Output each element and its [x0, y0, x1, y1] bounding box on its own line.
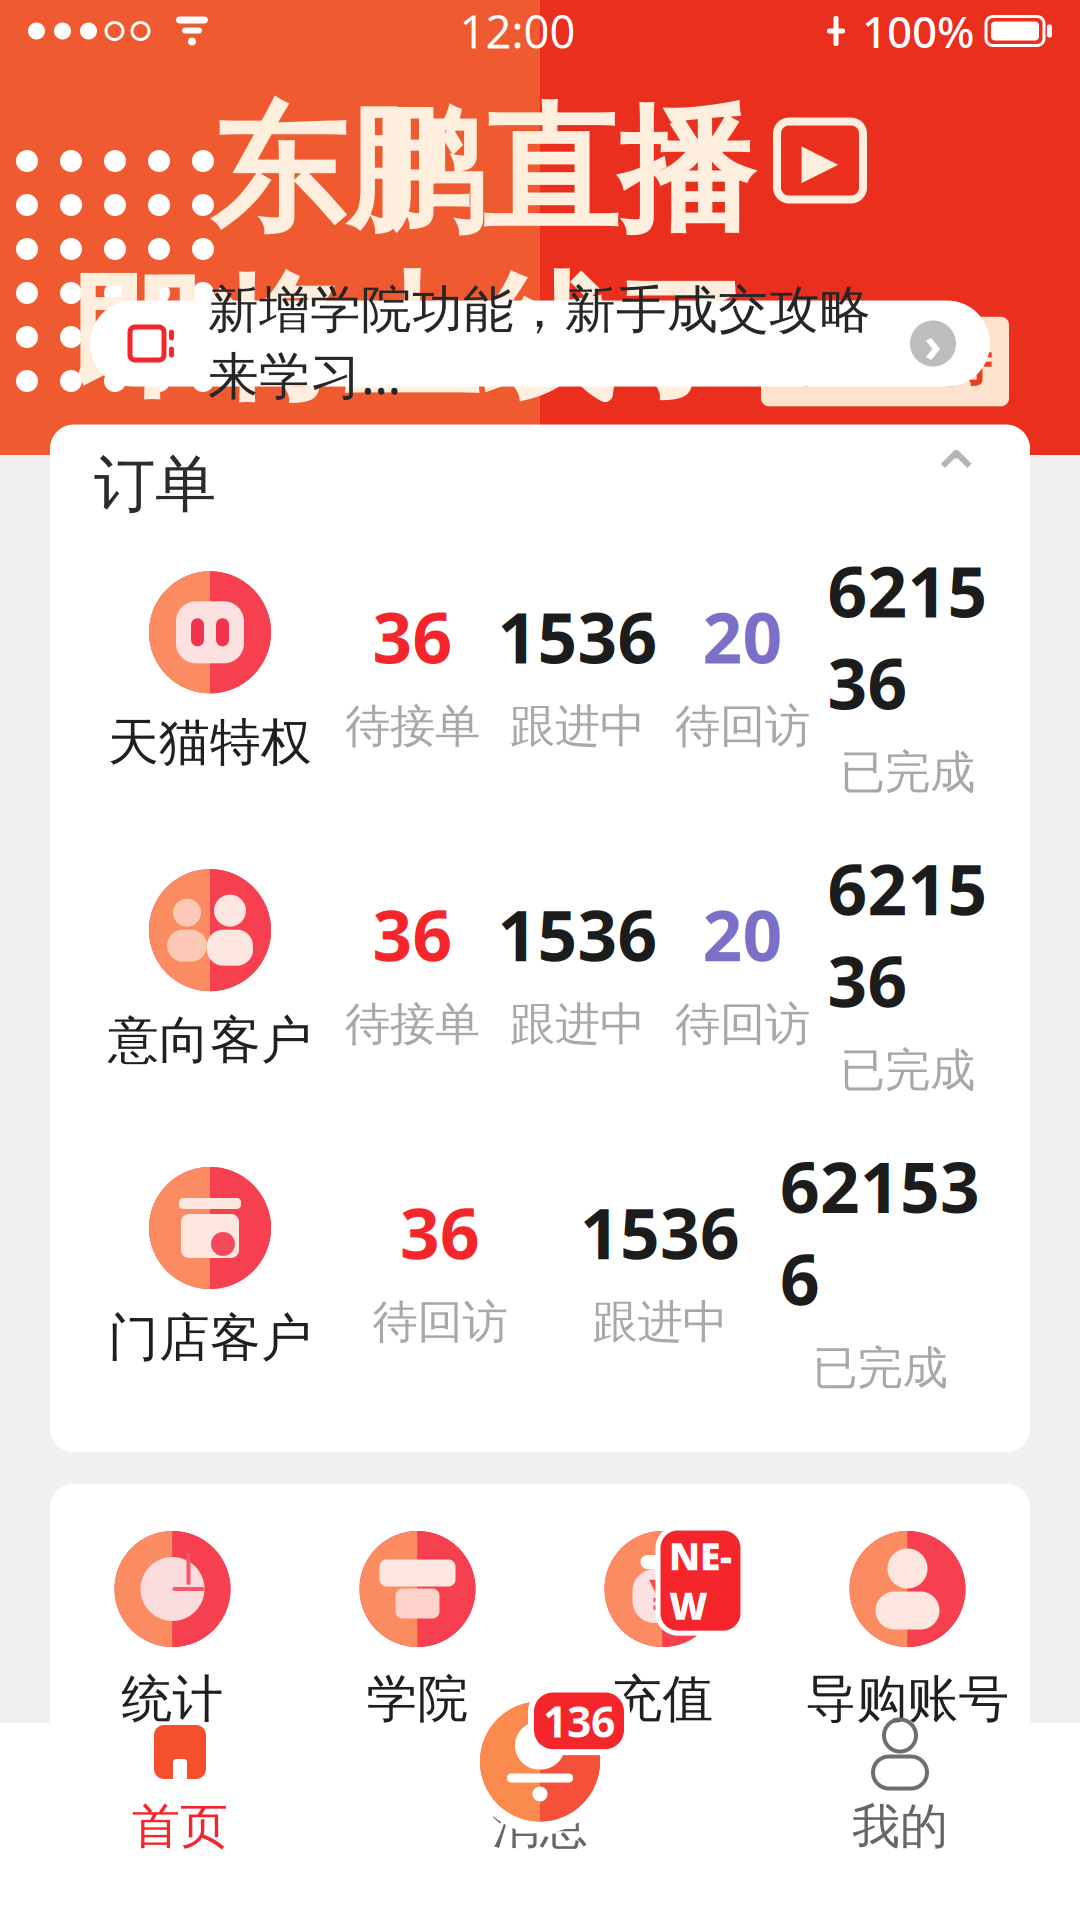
button[interactable]: 我的	[720, 1723, 1080, 1920]
staticText: 订单	[94, 447, 216, 522]
staticText: 东鹏直播	[210, 88, 754, 255]
button[interactable]: 消息	[360, 1723, 720, 1920]
staticText: 12:00	[459, 1, 575, 61]
button[interactable]: NEW	[295, 1760, 540, 1920]
staticText: 20	[702, 888, 782, 980]
button[interactable]: 门店客户	[50, 1140, 1030, 1396]
staticText: 1536	[497, 591, 657, 683]
staticText: 1536	[497, 888, 657, 980]
staticText: NEW	[179, 1763, 242, 1862]
button[interactable]: 新增学院功能，新手成交攻略来学习…	[90, 300, 990, 386]
staticText: 621536	[780, 1140, 980, 1324]
staticText: 跟进中	[592, 1294, 727, 1350]
staticText: 待回访	[675, 699, 810, 754]
staticText: 待回访	[372, 1294, 507, 1350]
staticText: 充值	[611, 1668, 713, 1730]
button[interactable]: 导购账号	[785, 1528, 1030, 1730]
button[interactable]: 学院	[295, 1528, 540, 1730]
staticText: 敬请期待	[779, 329, 991, 394]
staticText: ¥	[649, 1564, 676, 1628]
staticText: 统计	[121, 1668, 223, 1730]
button[interactable]: ¥	[540, 1528, 785, 1730]
button[interactable]: 统计	[50, 1528, 295, 1730]
staticText: ▶	[801, 133, 838, 188]
button[interactable]: ▶	[50, 1760, 295, 1920]
staticText: 已完成	[840, 1042, 975, 1098]
button[interactable]: 天猫特权	[50, 544, 1030, 800]
staticText: NEW	[424, 1763, 487, 1862]
staticText: 跟进中	[510, 996, 645, 1052]
staticText: ▶	[158, 1810, 187, 1852]
staticText: 跟进中	[510, 699, 645, 754]
staticText: 导购账号	[805, 1668, 1009, 1730]
button[interactable]: 消息	[445, 1686, 635, 1836]
staticText: 621536	[827, 842, 987, 1026]
staticText: 621536	[827, 544, 987, 729]
staticText: 新增学院功能，新手成交攻略来学习…	[208, 279, 871, 408]
staticText: 36	[400, 1186, 480, 1278]
staticText: 意向客户	[108, 1009, 312, 1071]
staticText: 待接单	[345, 699, 480, 754]
button[interactable]: 意向客户	[50, 842, 1030, 1098]
staticText: 待回访	[675, 996, 810, 1052]
staticText: 1536	[580, 1186, 740, 1278]
staticText: 即将上线了	[71, 257, 751, 424]
staticText: 学院	[366, 1668, 468, 1730]
staticText: NEW	[669, 1531, 732, 1630]
staticText: ⌃	[926, 437, 986, 518]
staticText: 已完成	[812, 1340, 947, 1396]
staticText: 门店客户	[108, 1307, 312, 1369]
button[interactable]: 首页	[0, 1723, 360, 1920]
staticText: 36	[372, 591, 452, 683]
staticText: 136	[543, 1692, 615, 1749]
staticText: 已完成	[840, 745, 975, 800]
staticText: 20	[702, 591, 782, 683]
staticText: 36	[372, 888, 452, 980]
staticText: 首页	[132, 1797, 228, 1856]
staticText: 待接单	[345, 996, 480, 1052]
staticText: 天猫特权	[108, 711, 312, 773]
staticText: ›	[924, 312, 942, 375]
staticText: 消息	[492, 1797, 588, 1856]
button[interactable]: 订单	[50, 424, 1030, 544]
staticText: 我的	[852, 1797, 948, 1856]
staticText: 100%	[862, 2, 974, 60]
